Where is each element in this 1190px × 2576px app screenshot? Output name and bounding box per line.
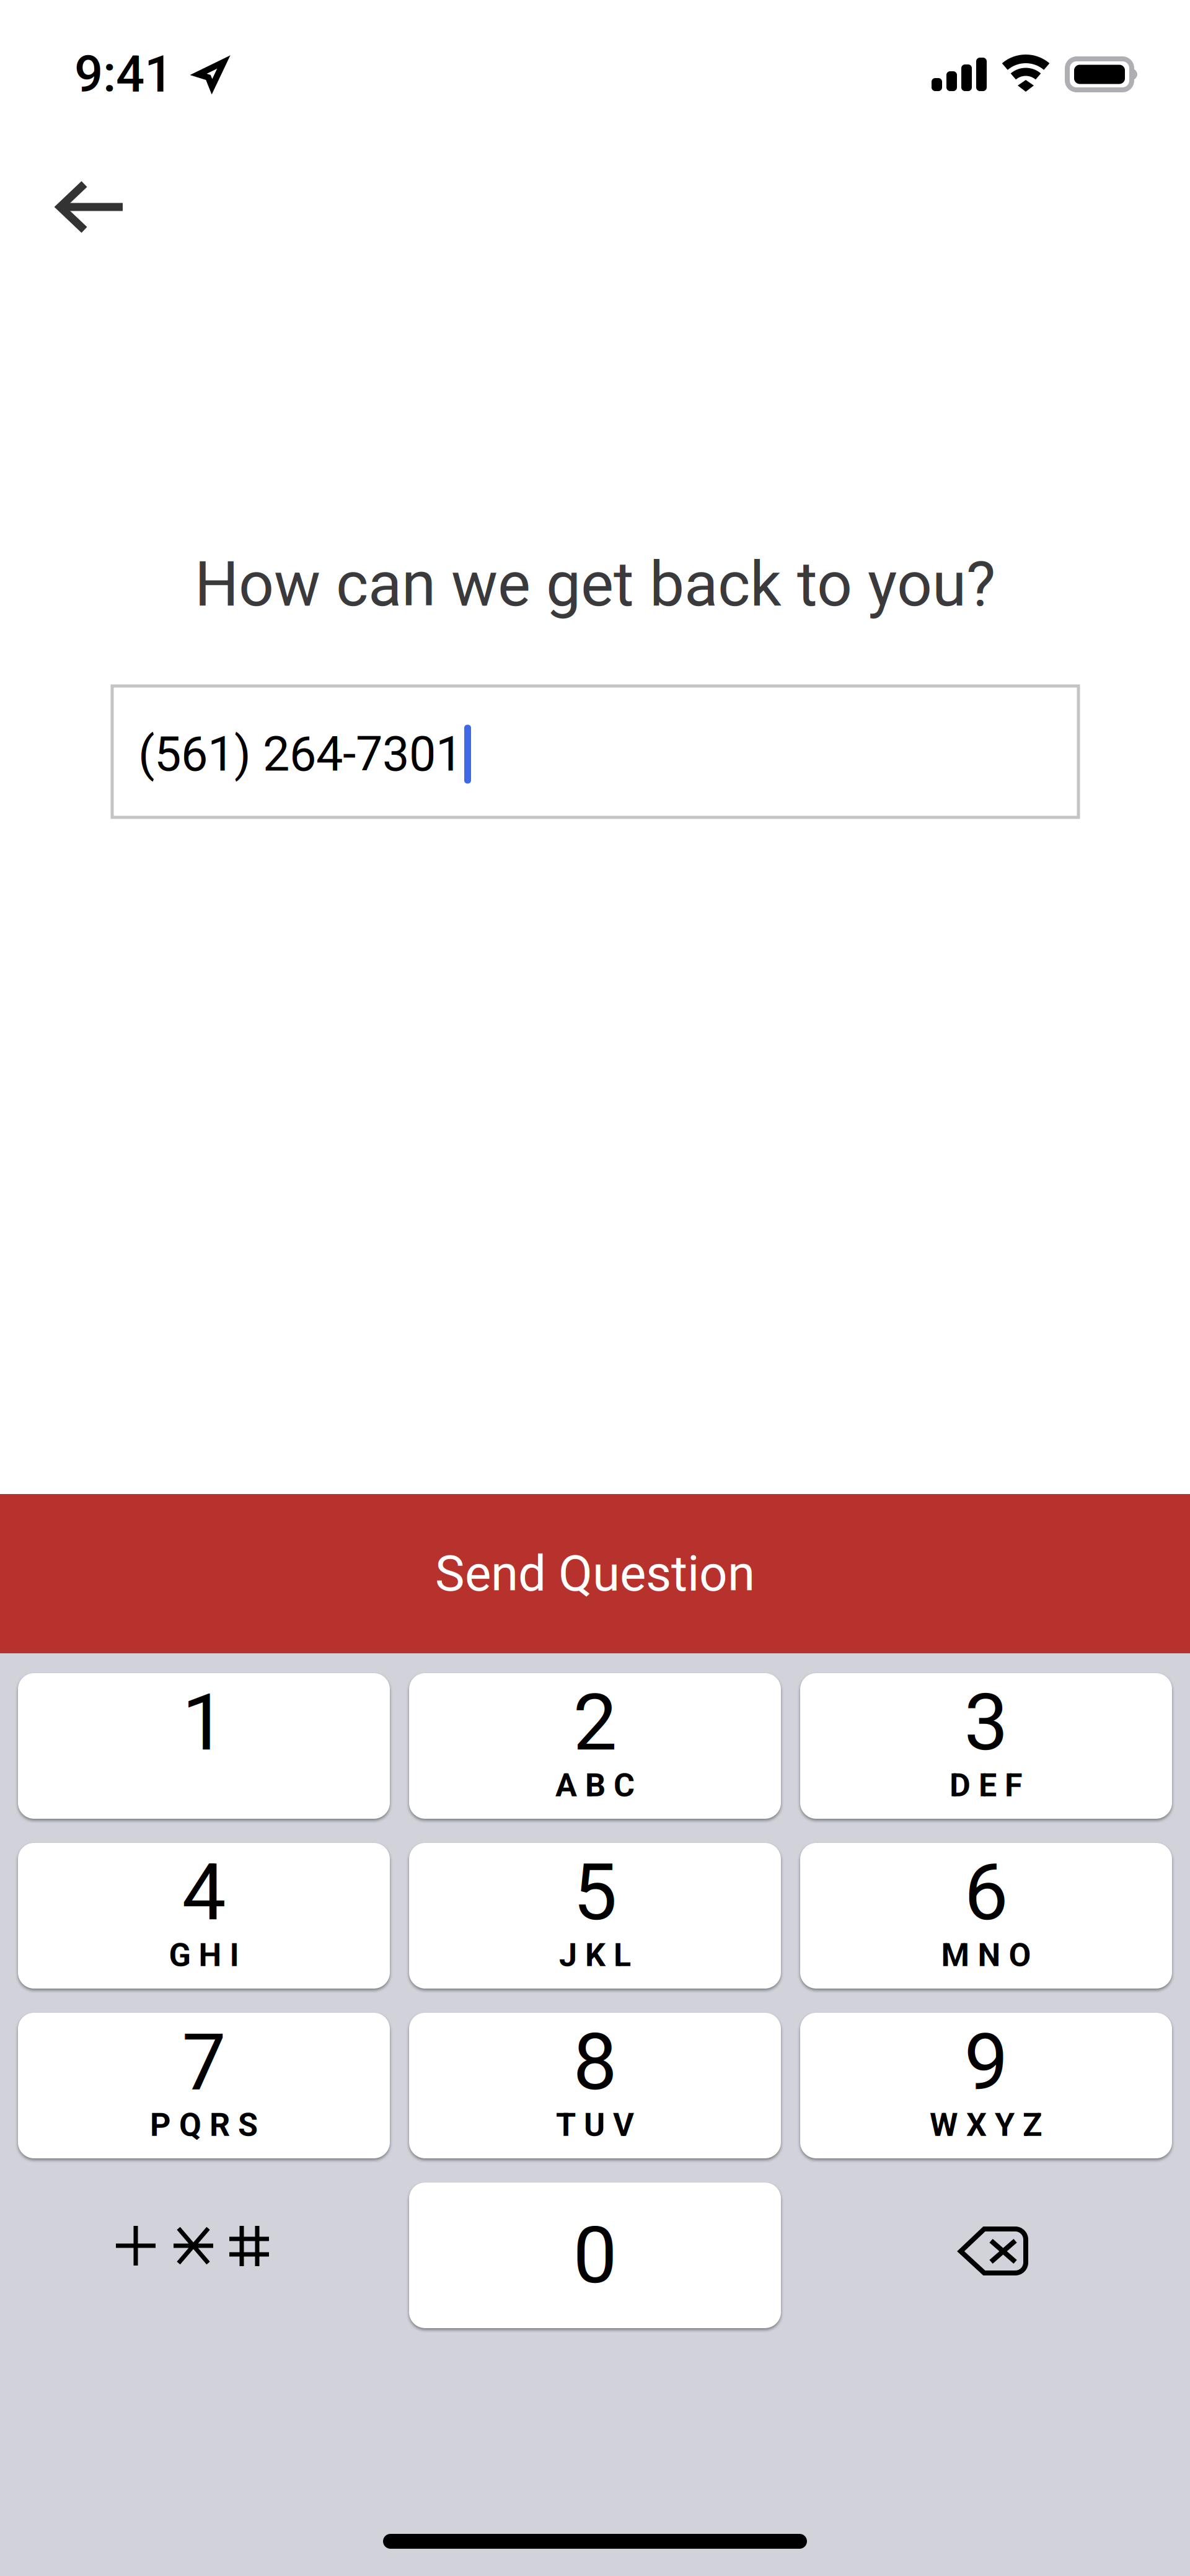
staticText: MNO xyxy=(941,1936,1031,1974)
button[interactable]: 5 xyxy=(409,1843,781,1989)
button[interactable]: 8 xyxy=(409,2013,781,2158)
staticText: 7 xyxy=(182,2016,226,2108)
staticText: 9 xyxy=(964,2016,1008,2108)
button[interactable]: 4 xyxy=(18,1843,390,1989)
staticText: 4 xyxy=(182,1847,226,1938)
staticText: WXYZ xyxy=(930,2106,1042,2144)
button[interactable]: 9 xyxy=(800,2013,1172,2158)
staticText: ABC xyxy=(555,1766,635,1804)
staticText: (561) 264-7301 xyxy=(138,726,462,782)
staticText: GHI xyxy=(169,1936,239,1974)
button[interactable]: Plus, asterisk, pound xyxy=(18,2183,390,2328)
button[interactable]: 3 xyxy=(800,1673,1172,1819)
staticText: 6 xyxy=(964,1847,1008,1938)
button[interactable]: 7 xyxy=(18,2013,390,2158)
staticText: JKL xyxy=(559,1936,631,1974)
staticText: 8 xyxy=(573,2016,617,2108)
staticText: How can we get back to you? xyxy=(195,548,995,621)
button[interactable]: 2 xyxy=(409,1673,781,1819)
staticText: PQRS xyxy=(150,2106,258,2144)
button[interactable]: 6 xyxy=(800,1843,1172,1989)
staticText: TUV xyxy=(556,2106,634,2144)
button[interactable]: 0 xyxy=(409,2183,781,2328)
staticText: 1 xyxy=(182,1677,226,1769)
staticText: Send Question xyxy=(435,1545,755,1603)
button[interactable]: Delete xyxy=(800,2183,1172,2328)
button[interactable]: Send Question xyxy=(0,1494,1190,1653)
staticText: 9:41 xyxy=(74,45,173,104)
button[interactable]: Back xyxy=(0,152,169,262)
staticText: 0 xyxy=(573,2210,617,2302)
staticText: 2 xyxy=(573,1677,617,1769)
staticText: DEF xyxy=(950,1766,1023,1804)
staticText: 3 xyxy=(964,1677,1008,1769)
button[interactable]: 1 xyxy=(18,1673,390,1819)
staticText: 5 xyxy=(573,1847,617,1938)
